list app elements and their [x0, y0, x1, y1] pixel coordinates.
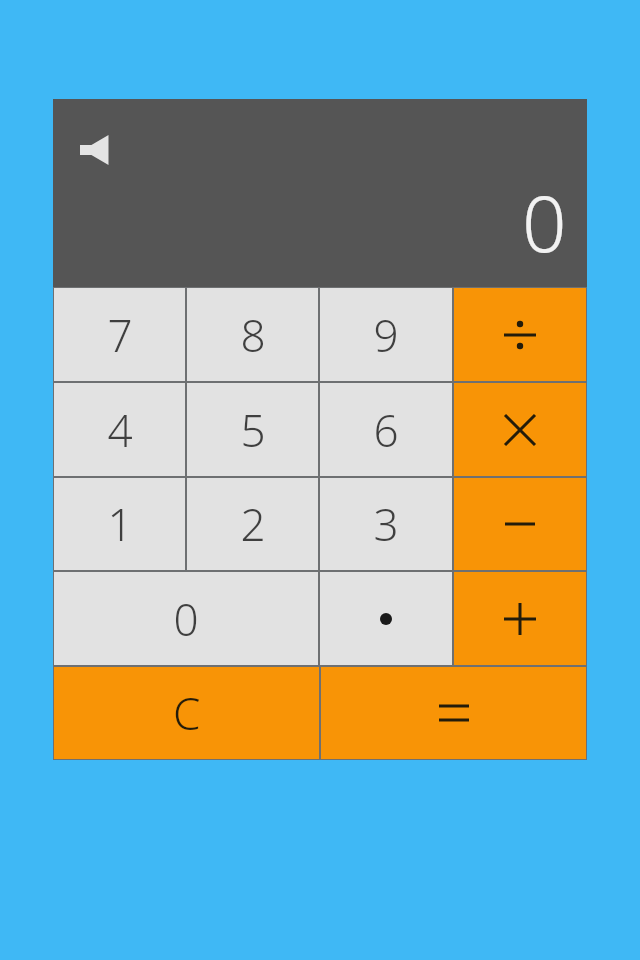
button[interactable]: 1	[53, 477, 186, 571]
staticText: 7	[107, 305, 133, 365]
staticText: 4	[107, 400, 133, 460]
button[interactable]: Equals	[320, 666, 587, 760]
button[interactable]: 2	[186, 477, 319, 571]
staticText: 8	[240, 305, 266, 365]
staticText: C	[173, 683, 201, 743]
button[interactable]: 3	[319, 477, 453, 571]
staticText: 2	[240, 494, 266, 554]
staticText: 3	[373, 494, 399, 554]
staticText: 9	[373, 305, 399, 365]
button[interactable]: 7	[53, 287, 186, 382]
button[interactable]: C	[53, 666, 320, 760]
button[interactable]: 9	[319, 287, 453, 382]
staticText: 6	[373, 400, 399, 460]
button[interactable]: Multiply	[453, 382, 587, 477]
staticText: 0	[522, 169, 567, 275]
staticText: 1	[107, 494, 133, 554]
button[interactable]: Sound	[78, 133, 112, 167]
button[interactable]: 8	[186, 287, 319, 382]
button[interactable]: 6	[319, 382, 453, 477]
staticText: 0	[173, 589, 199, 649]
button[interactable]: Decimal point	[319, 571, 453, 666]
button[interactable]: Subtract	[453, 477, 587, 571]
button[interactable]: 0	[53, 571, 319, 666]
button[interactable]: Divide	[453, 287, 587, 382]
staticText: 5	[240, 400, 266, 460]
button[interactable]: 5	[186, 382, 319, 477]
button[interactable]: Add	[453, 571, 587, 666]
button[interactable]: 4	[53, 382, 186, 477]
